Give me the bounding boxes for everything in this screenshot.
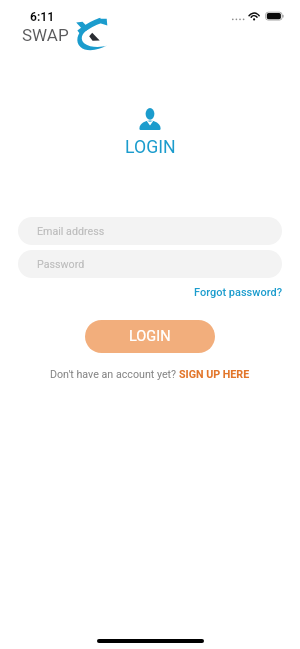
button[interactable]: Forgot password?	[194, 286, 300, 299]
staticText: Don't have an account yet?	[50, 368, 179, 381]
staticText: Email address	[37, 225, 105, 238]
staticText: LOGIN	[125, 137, 176, 158]
other: User	[139, 108, 161, 130]
staticText: SWAP	[22, 25, 69, 45]
staticText: Password	[37, 258, 85, 271]
button[interactable]: LOGIN	[85, 320, 215, 353]
button[interactable]: Email address	[18, 217, 282, 245]
staticText: LOGIN	[129, 328, 171, 345]
button[interactable]: Password	[18, 250, 282, 278]
staticText: 6:11	[30, 10, 55, 24]
button[interactable]: SIGN UP HERE	[179, 368, 250, 381]
other: Swap logo	[75, 17, 111, 51]
